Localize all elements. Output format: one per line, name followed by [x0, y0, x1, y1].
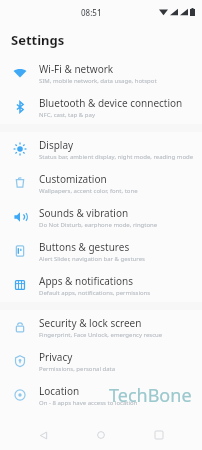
staticText: 08:51	[81, 7, 102, 18]
staticText: SIM, mobile network, data usage, hotspot	[39, 77, 157, 85]
staticText: Buttons & gestures	[39, 240, 130, 254]
staticText: Wi-Fi & network	[39, 62, 114, 76]
button[interactable]: Recent apps	[144, 420, 174, 450]
staticText: Sounds & vibration	[39, 206, 129, 220]
button[interactable]: Home	[86, 420, 116, 450]
button[interactable]: Apps & notifications	[0, 268, 202, 302]
staticText: Permissions, personal data	[39, 365, 116, 373]
staticText: Bluetooth & device connection	[39, 96, 183, 110]
button[interactable]: Customization	[0, 166, 202, 200]
button[interactable]: Location	[0, 378, 202, 412]
staticText: Apps & notifications	[39, 274, 134, 288]
staticText: TechBone	[109, 383, 192, 408]
staticText: Settings	[11, 31, 65, 49]
button[interactable]: Security & lock screen	[0, 310, 202, 344]
button[interactable]: Privacy	[0, 344, 202, 378]
button[interactable]: Back	[28, 420, 58, 450]
staticText: On - 8 apps have access to location	[39, 399, 138, 407]
staticText: Status bar, ambient display, night mode,…	[39, 153, 194, 161]
staticText: Privacy	[39, 350, 73, 364]
staticText: NFC, cast, tap & pay	[39, 111, 95, 119]
button[interactable]: Bluetooth & device connection	[0, 90, 202, 124]
button[interactable]: Wi-Fi & network	[0, 56, 202, 90]
button[interactable]: Sounds & vibration	[0, 200, 202, 234]
staticText: Wallpapers, accent color, font, tone	[39, 187, 138, 195]
button[interactable]: Buttons & gestures	[0, 234, 202, 268]
staticText: Default apps, notifications, permissions	[39, 289, 151, 297]
staticText: Alert Slider, navigation bar & gestures	[39, 255, 145, 263]
staticText: Fingerprint, Face Unlock, emergency resc…	[39, 331, 163, 339]
staticText: Do Not Disturb, earphone mode, ringtone	[39, 221, 158, 229]
staticText: Location	[39, 384, 80, 398]
staticText: Customization	[39, 172, 107, 186]
button[interactable]: Display	[0, 132, 202, 166]
staticText: Display	[39, 138, 74, 152]
staticText: Security & lock screen	[39, 316, 142, 330]
